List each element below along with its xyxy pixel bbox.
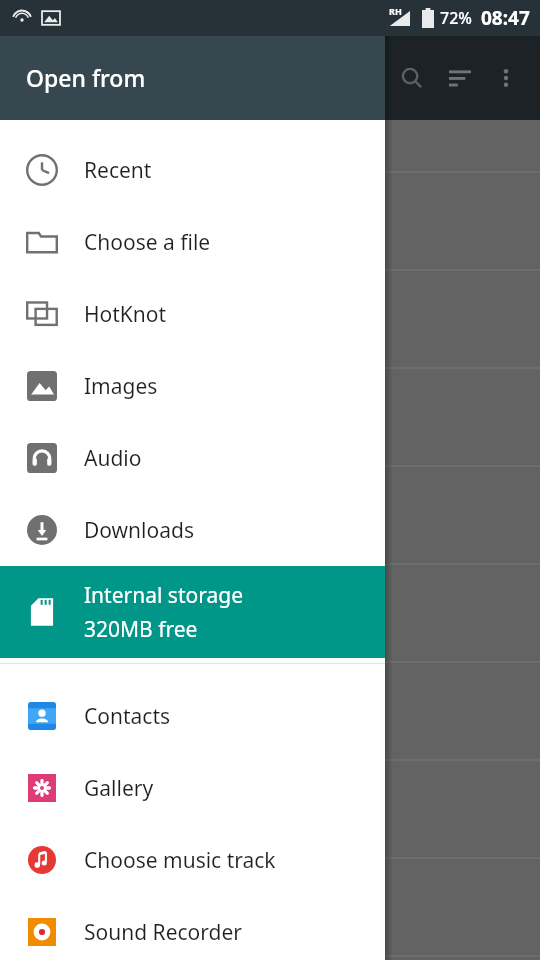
staticText: Sound Recorder <box>84 918 242 947</box>
staticText: HotKnot <box>84 300 167 329</box>
staticText: Open from <box>26 62 146 93</box>
button[interactable]: Images <box>0 350 385 422</box>
button[interactable]: Choose a file <box>0 206 385 278</box>
staticText: 72% <box>440 7 472 29</box>
button[interactable]: Sound Recorder <box>0 896 385 960</box>
staticText: Contacts <box>84 702 171 731</box>
staticText: Images <box>84 372 158 401</box>
staticText: RH <box>389 5 402 17</box>
button[interactable]: Audio <box>0 422 385 494</box>
button[interactable]: Choose music track <box>0 824 385 896</box>
staticText: Choose a file <box>84 228 211 257</box>
staticText: 320MB free <box>84 615 198 644</box>
button[interactable]: Search <box>388 54 436 102</box>
button[interactable]: Sort <box>436 54 484 102</box>
button[interactable]: Downloads <box>0 494 385 566</box>
button[interactable]: Gallery <box>0 752 385 824</box>
staticText: Choose music track <box>84 846 276 875</box>
staticText: Downloads <box>84 516 194 545</box>
staticText: Audio <box>84 444 142 473</box>
staticText: 08:47 <box>481 5 530 31</box>
button[interactable]: Internal storage <box>0 566 385 658</box>
button[interactable]: Contacts <box>0 680 385 752</box>
button[interactable]: HotKnot <box>0 278 385 350</box>
staticText: Recent <box>84 156 152 185</box>
staticText: Internal storage <box>84 581 243 610</box>
button[interactable]: Recent <box>0 134 385 206</box>
button[interactable]: More options <box>484 56 528 100</box>
staticText: Gallery <box>84 774 154 803</box>
